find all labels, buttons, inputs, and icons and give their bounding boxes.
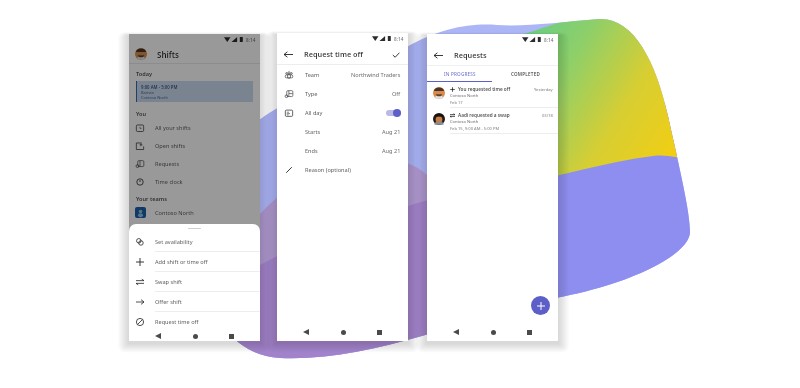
button[interactable]: Home [188, 331, 202, 341]
staticText: Type [305, 90, 318, 98]
staticText: Time clock [155, 178, 183, 186]
button[interactable]: Request time off [136, 312, 260, 331]
staticText: All your shifts [155, 124, 191, 132]
staticText: Open shifts [155, 142, 186, 150]
button[interactable]: Recents [522, 325, 536, 339]
staticText: Aadi requested a swap [458, 112, 510, 118]
button[interactable]: Home [486, 325, 500, 339]
button[interactable]: Back [433, 50, 444, 61]
button[interactable]: Requests [136, 155, 253, 173]
staticText: Requests [454, 50, 487, 60]
button[interactable]: Aadi requested a swap [433, 108, 553, 133]
button[interactable]: Back [299, 325, 313, 339]
staticText: You requested time off [458, 86, 511, 92]
button[interactable]: COMPLETED [492, 66, 558, 82]
button[interactable]: Starts [285, 122, 401, 141]
staticText: Contoso North [141, 95, 168, 100]
button[interactable]: 9:00 AM - 5:00 PM [136, 81, 253, 102]
button[interactable]: Contoso North [135, 205, 254, 220]
staticText: Request time off [155, 318, 199, 326]
button[interactable]: You requested time off [433, 82, 553, 107]
button[interactable]: Open shifts [136, 137, 253, 155]
staticText: Contoso North [155, 209, 194, 217]
staticText: Reason (optional) [305, 166, 351, 174]
staticText: Northwind Traders [351, 71, 401, 79]
staticText: 9:00 AM - 5:00 PM [141, 84, 178, 90]
staticText: All day [305, 109, 323, 117]
staticText: Set availability [155, 238, 193, 246]
button[interactable]: Back [449, 325, 463, 339]
staticText: Contoso North [450, 93, 479, 99]
staticText: 8:14 [246, 37, 256, 43]
staticText: Yesterday [534, 87, 553, 93]
button[interactable]: Team [285, 65, 401, 84]
button[interactable]: Back [151, 331, 165, 341]
staticText: Feb 15, 9:00 AM - 5:00 PM [450, 126, 500, 132]
staticText: Feb 17 [450, 100, 463, 106]
button[interactable]: Set availability [136, 232, 260, 251]
button[interactable]: Add request [531, 296, 550, 315]
staticText: Shifts [157, 49, 179, 60]
staticText: 8:14 [394, 36, 404, 42]
button[interactable]: Add shift or time off [136, 252, 260, 271]
button[interactable]: Home [336, 325, 350, 339]
staticText: Team [305, 71, 320, 79]
button[interactable]: Swap shift [136, 272, 260, 291]
staticText: Requests [155, 160, 180, 168]
staticText: Ends [305, 147, 318, 155]
button[interactable]: Recents [224, 331, 238, 341]
staticText: Swap shift [155, 278, 183, 286]
staticText: Request time off [304, 49, 364, 59]
staticText: Aug 21 [382, 147, 401, 155]
button[interactable]: Back [283, 49, 294, 60]
staticText: 8:14 [544, 37, 554, 43]
staticText: Today [136, 70, 153, 78]
button[interactable]: Offer shift [136, 292, 260, 311]
button[interactable]: Time clock [136, 173, 253, 191]
staticText: Barista [141, 90, 154, 95]
button[interactable]: Type [285, 84, 401, 103]
button[interactable]: Ends [285, 141, 401, 160]
staticText: Offer shift [155, 298, 182, 306]
button[interactable]: IN PROGRESS [427, 66, 492, 82]
staticText: Add shift or time off [155, 258, 208, 266]
staticText: You [136, 110, 147, 118]
staticText: COMPLETED [511, 71, 540, 77]
staticText: 03/18 [542, 113, 553, 119]
button[interactable]: All day [285, 103, 401, 122]
staticText: IN PROGRESS [444, 71, 476, 77]
button[interactable]: All your shifts [136, 119, 253, 137]
staticText: Aug 21 [382, 128, 401, 136]
staticText: Contoso North [450, 119, 479, 125]
staticText: Your teams [136, 195, 167, 203]
button[interactable]: Recents [372, 325, 386, 339]
button[interactable]: Confirm [390, 49, 401, 60]
button[interactable]: Reason (optional) [285, 160, 401, 179]
staticText: Starts [305, 128, 321, 136]
staticText: Off [392, 90, 401, 98]
